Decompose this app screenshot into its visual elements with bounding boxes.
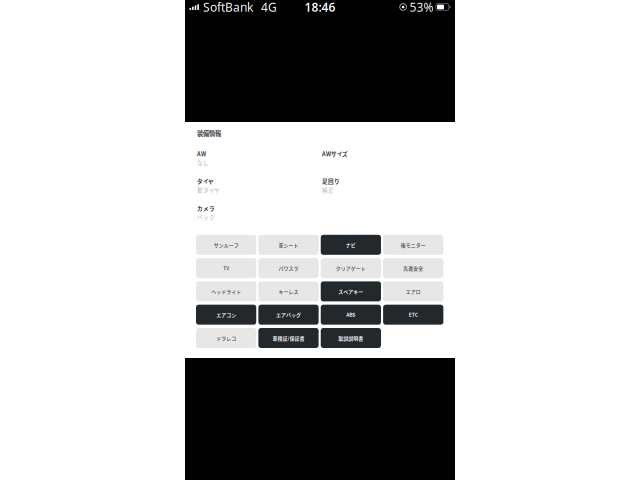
staticText: スペアキー [338,288,363,295]
staticText: 純正 [322,186,334,194]
staticText: ドラレコ [216,334,236,341]
button[interactable]: TV [196,258,256,278]
button[interactable]: エアバッグ [258,305,319,325]
button[interactable]: エアコン [196,305,256,325]
button[interactable]: 革シート [258,235,319,255]
button[interactable]: 取説説明書 [321,328,381,348]
staticText: エアコン [216,311,236,318]
staticText: 53% [409,0,433,15]
staticText: AW [197,150,206,158]
staticText: AWサイズ [322,150,348,158]
staticText: クリアゲート [336,264,366,272]
staticText: 革シート [278,241,298,248]
staticText: 取説説明書 [338,334,363,341]
staticText: サンルーフ [214,241,239,248]
button[interactable]: 後モニター [383,235,443,255]
staticText: 4G [261,0,277,15]
button[interactable]: ナビ [321,235,381,255]
button[interactable]: ABS [321,305,381,325]
staticText: なし [197,158,209,167]
staticText: 足回り [322,177,340,185]
button[interactable]: サンルーフ [196,235,256,255]
staticText: 夏タイヤ [197,186,220,194]
staticText: 先進安全 [403,264,423,272]
staticText: タイヤ [197,177,214,185]
staticText: 後モニター [401,241,426,248]
staticText: TV [223,264,229,272]
staticText: ETC [409,311,418,318]
button[interactable]: キーレス [258,281,319,301]
staticText: カメラ [197,204,215,212]
staticText: 車検証/保証書 [272,334,304,341]
staticText: ABS [346,311,355,318]
button[interactable]: ETC [383,305,443,325]
button[interactable]: ドラレコ [196,328,256,348]
staticText: 装備情報 [197,128,221,138]
staticText: エアバッグ [276,311,301,318]
staticText: 18:46 [304,0,335,15]
staticText: SoftBank [203,0,253,15]
button[interactable]: エアロ [383,281,443,301]
staticText: バック [197,213,215,221]
button[interactable]: ヘッドライト [196,281,256,301]
button[interactable]: 車検証/保証書 [258,328,319,348]
button[interactable]: クリアゲート [321,258,381,278]
staticText: キーレス [278,288,298,295]
button[interactable]: パワスラ [258,258,319,278]
staticText: ナビ [346,241,356,248]
staticText: パワスラ [278,264,298,272]
button[interactable]: スペアキー [321,281,381,301]
staticText: エアロ [406,288,421,295]
staticText: ヘッドライト [211,288,241,295]
button[interactable]: 先進安全 [383,258,443,278]
